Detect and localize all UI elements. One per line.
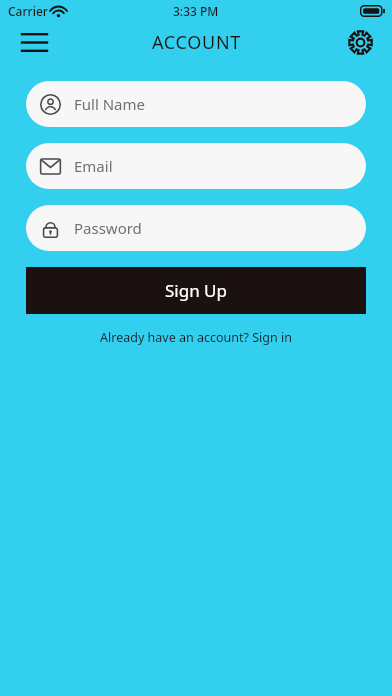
staticText: Carrier [8,3,48,19]
staticText: 3:33 PM [173,3,219,19]
staticText: Password [74,218,142,238]
staticText: Email [74,156,113,176]
button[interactable]: Email [26,143,366,189]
button[interactable]: Sign Up [26,267,366,314]
button[interactable]: Password [26,205,366,251]
staticText: ACCOUNT [152,30,241,55]
staticText: Sign Up [165,279,227,302]
button[interactable]: Settings [340,22,380,62]
button[interactable]: Full Name [26,81,366,127]
staticText: Already have an account? Sign in [100,329,292,346]
button[interactable]: Already have an account? Sign in [0,329,392,346]
button[interactable]: Open menu [14,22,54,62]
staticText: Full Name [74,94,145,114]
